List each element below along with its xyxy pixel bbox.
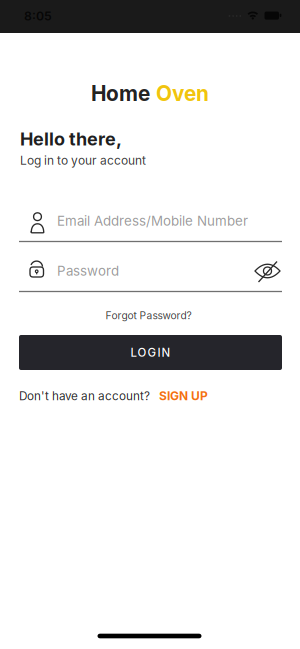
staticText: Email Address/Mobile Number: [57, 213, 248, 229]
staticText: Log in to your account: [20, 153, 146, 168]
staticText: Home: [91, 81, 150, 106]
button[interactable]: SIGN UP: [159, 389, 208, 403]
button[interactable]: Email Address/Mobile Number: [19, 212, 282, 243]
button[interactable]: Forgot Password?: [105, 309, 191, 322]
staticText: Don't have an account?: [19, 389, 150, 403]
staticText: Oven: [156, 81, 209, 106]
button[interactable]: Password: [19, 262, 282, 293]
staticText: Password: [57, 263, 119, 279]
button[interactable]: [252, 260, 282, 284]
staticText: 8:05: [24, 9, 52, 23]
staticText: L O G I N: [130, 346, 170, 359]
staticText: Hello there,: [20, 128, 122, 150]
staticText: Forgot Password?: [105, 309, 191, 322]
button[interactable]: L O G I N: [19, 335, 282, 370]
staticText: SIGN UP: [159, 389, 208, 403]
